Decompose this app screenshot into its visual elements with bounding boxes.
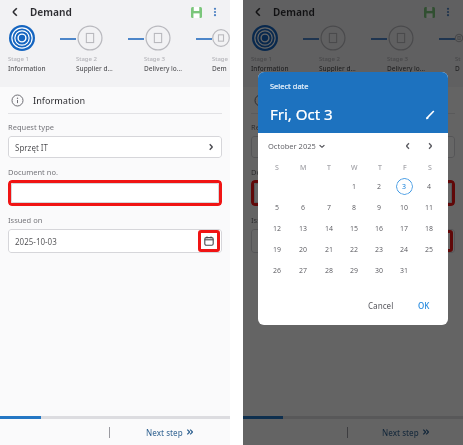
button[interactable]: 2025-10-03 bbox=[8, 229, 222, 253]
button[interactable]: More options bbox=[206, 3, 224, 21]
staticText: 12 bbox=[273, 224, 282, 234]
button[interactable]: Back bbox=[6, 3, 24, 21]
staticText: T bbox=[327, 163, 331, 173]
button[interactable]: Stage 3 bbox=[144, 24, 196, 73]
button[interactable]: Cancel bbox=[362, 297, 400, 314]
button[interactable]: 31 bbox=[396, 262, 413, 279]
button[interactable]: 6 bbox=[295, 199, 312, 216]
button[interactable]: 25 bbox=[421, 241, 438, 258]
staticText: Issued on bbox=[8, 215, 43, 225]
button[interactable]: Stage 1 bbox=[251, 24, 303, 73]
staticText: 30 bbox=[375, 266, 384, 276]
button[interactable]: 30 bbox=[371, 262, 388, 279]
button[interactable]: More options bbox=[439, 3, 457, 21]
staticText: 25 bbox=[425, 245, 434, 255]
button[interactable]: Stage 4 bbox=[212, 24, 230, 73]
staticText: T bbox=[378, 163, 382, 173]
button[interactable]: 15 bbox=[346, 220, 363, 237]
button[interactable]: Pick date bbox=[431, 230, 453, 252]
staticText: 7 bbox=[327, 203, 332, 213]
staticText: 14 bbox=[325, 224, 334, 234]
button[interactable]: 11 bbox=[421, 199, 438, 216]
staticText: 23 bbox=[375, 245, 384, 255]
staticText: 6 bbox=[301, 203, 306, 213]
button[interactable]: 3 bbox=[396, 178, 413, 195]
staticText: Information bbox=[33, 94, 86, 106]
button[interactable]: 4 bbox=[421, 178, 438, 195]
button[interactable]: 24 bbox=[396, 241, 413, 258]
button[interactable]: OK bbox=[412, 297, 436, 314]
button[interactable]: Sprzęt IT bbox=[251, 136, 455, 158]
button[interactable] bbox=[11, 183, 219, 203]
button[interactable] bbox=[254, 183, 452, 203]
button[interactable]: Save bbox=[419, 2, 439, 22]
staticText: Stage 4 bbox=[455, 55, 463, 63]
button[interactable]: Back bbox=[249, 3, 267, 21]
staticText: W bbox=[351, 163, 358, 173]
button[interactable]: 21 bbox=[321, 241, 338, 258]
button[interactable]: Next step bbox=[348, 419, 463, 445]
staticText: OK bbox=[418, 300, 430, 311]
staticText: Stage 1 bbox=[251, 55, 272, 63]
staticText: Delivery lo... bbox=[387, 64, 426, 73]
staticText: 2025-10-03 bbox=[15, 236, 57, 247]
button[interactable]: Stage 2 bbox=[76, 24, 128, 73]
staticText: Stage 3 bbox=[144, 55, 165, 63]
button[interactable]: Stage 4 bbox=[455, 24, 463, 73]
button[interactable]: Stage 3 bbox=[387, 24, 439, 73]
staticText: 4 bbox=[427, 182, 432, 192]
button[interactable]: Stage 1 bbox=[8, 24, 60, 73]
staticText: 8 bbox=[352, 203, 357, 213]
button[interactable]: 16 bbox=[371, 220, 388, 237]
staticText: Delivery lo... bbox=[144, 64, 183, 73]
button[interactable]: 28 bbox=[321, 262, 338, 279]
button[interactable]: 1 bbox=[346, 178, 363, 195]
button[interactable]: 27 bbox=[295, 262, 312, 279]
button[interactable]: 17 bbox=[396, 220, 413, 237]
staticText: S bbox=[275, 163, 279, 173]
staticText: Stage 1 bbox=[8, 55, 29, 63]
button[interactable]: Edit date bbox=[422, 106, 438, 122]
button[interactable]: Next month bbox=[422, 138, 438, 154]
staticText: 17 bbox=[400, 224, 409, 234]
button[interactable]: Previous month bbox=[400, 138, 416, 154]
button[interactable]: 13 bbox=[295, 220, 312, 237]
staticText: 27 bbox=[299, 266, 308, 276]
button[interactable]: Next step bbox=[110, 419, 230, 445]
button[interactable]: 26 bbox=[269, 262, 286, 279]
staticText: Demand bbox=[30, 5, 72, 19]
button[interactable]: 20 bbox=[295, 241, 312, 258]
button[interactable]: 2025-10-03 bbox=[251, 229, 455, 253]
staticText: Request type bbox=[251, 122, 297, 132]
staticText: Stage 4 bbox=[212, 55, 230, 63]
staticText: Stage 3 bbox=[387, 55, 408, 63]
staticText: 10 bbox=[400, 203, 409, 213]
button[interactable]: 14 bbox=[321, 220, 338, 237]
button[interactable]: 22 bbox=[346, 241, 363, 258]
button[interactable]: Save bbox=[186, 2, 206, 22]
button[interactable]: 23 bbox=[371, 241, 388, 258]
button[interactable]: 5 bbox=[269, 199, 286, 216]
button[interactable]: 12 bbox=[269, 220, 286, 237]
button[interactable]: Sprzęt IT bbox=[8, 136, 222, 158]
button[interactable]: 18 bbox=[421, 220, 438, 237]
staticText: Next step bbox=[146, 427, 183, 438]
button[interactable]: 19 bbox=[269, 241, 286, 258]
button[interactable]: Stage 2 bbox=[319, 24, 371, 73]
button[interactable]: 29 bbox=[346, 262, 363, 279]
staticText: Request type bbox=[8, 122, 54, 132]
button[interactable]: 7 bbox=[321, 199, 338, 216]
button[interactable]: October 2025 bbox=[268, 141, 325, 151]
staticText: 13 bbox=[299, 224, 308, 234]
staticText: Document no. bbox=[251, 167, 301, 177]
button[interactable]: 2 bbox=[371, 178, 388, 195]
button[interactable]: 8 bbox=[346, 199, 363, 216]
staticText: 16 bbox=[375, 224, 384, 234]
button[interactable]: 10 bbox=[396, 199, 413, 216]
staticText: 24 bbox=[400, 245, 409, 255]
button[interactable]: 9 bbox=[371, 199, 388, 216]
staticText: 18 bbox=[425, 224, 434, 234]
staticText: Information bbox=[251, 64, 289, 73]
button[interactable]: Pick date bbox=[198, 230, 220, 252]
